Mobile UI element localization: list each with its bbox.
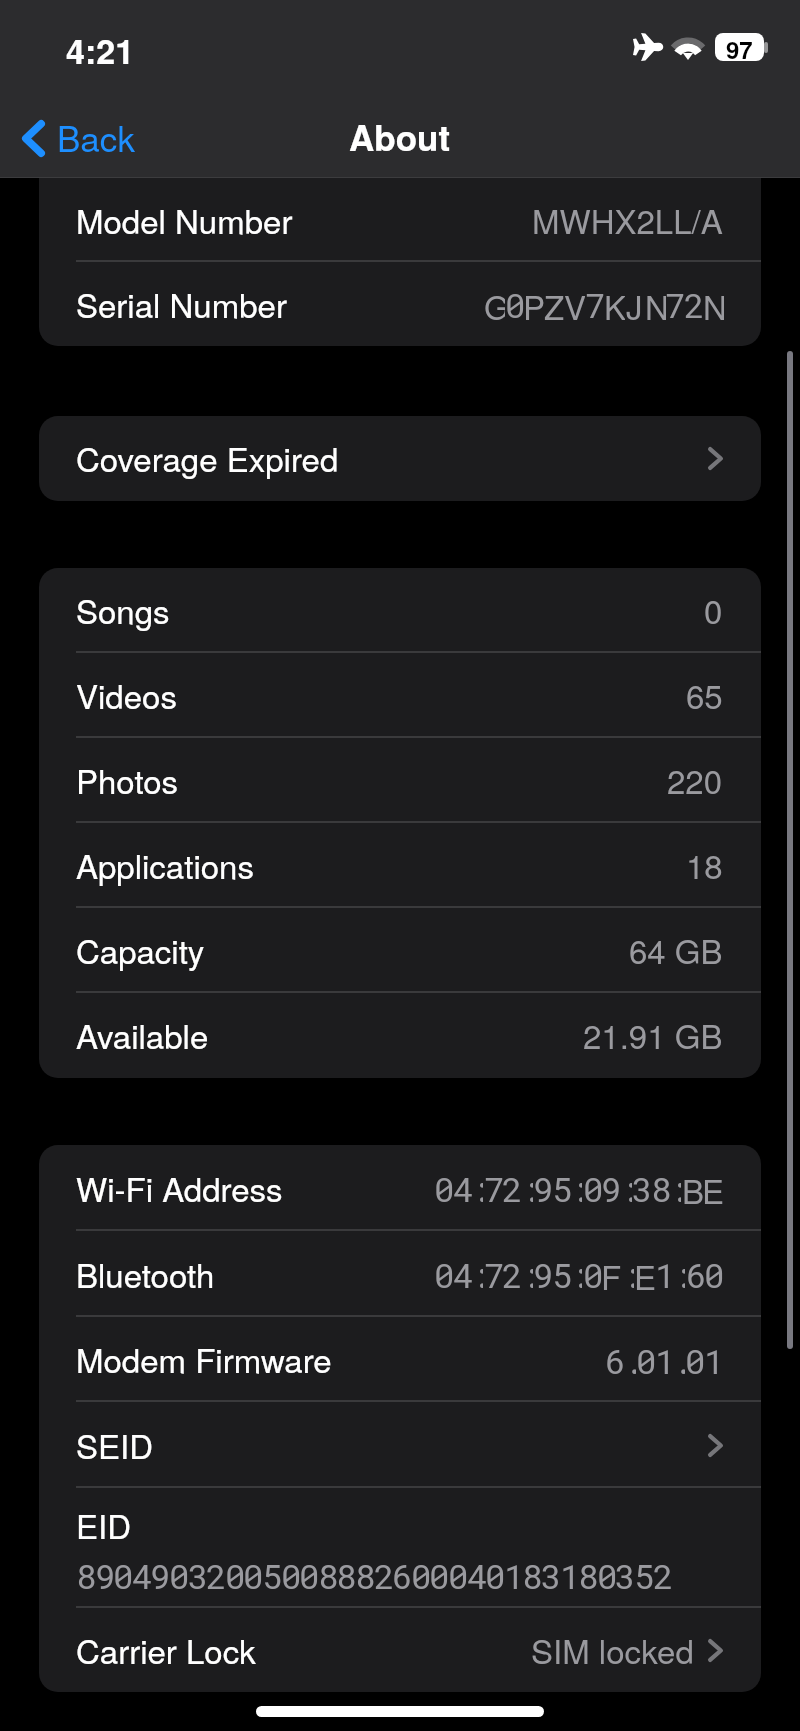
staticText: 2 bbox=[502, 1166, 521, 1208]
staticText: 0 bbox=[225, 1553, 244, 1595]
staticText: 0 bbox=[636, 1338, 655, 1380]
staticText: 8 bbox=[578, 1553, 597, 1595]
staticText: 64 GB bbox=[629, 926, 723, 973]
staticText: 8 bbox=[651, 1166, 670, 1208]
staticText: SIM locked bbox=[531, 1626, 694, 1673]
button[interactable]: Serial Number bbox=[39, 262, 761, 346]
button[interactable]: Capacity bbox=[39, 908, 761, 993]
staticText: 3 bbox=[632, 1166, 651, 1208]
staticText: 2 bbox=[502, 1252, 521, 1294]
staticText: 21.91 GB bbox=[583, 1011, 723, 1058]
staticText: Wi-Fi Address bbox=[76, 1164, 283, 1211]
staticText: Songs bbox=[76, 586, 170, 633]
staticText: 0 bbox=[597, 1553, 616, 1595]
staticText: 1 bbox=[704, 1338, 723, 1380]
staticText: Applications bbox=[76, 841, 254, 888]
staticText: 8 bbox=[318, 1553, 337, 1595]
staticText: 0 bbox=[448, 1553, 467, 1595]
staticText: 18 bbox=[686, 841, 723, 888]
staticText: 2 bbox=[374, 1553, 393, 1595]
staticText: . bbox=[624, 1338, 636, 1380]
staticText: 0 bbox=[243, 1553, 262, 1595]
staticText: 0 bbox=[411, 1553, 430, 1595]
button[interactable]: Model Number bbox=[39, 178, 761, 262]
staticText: 4:21 bbox=[66, 26, 135, 75]
staticText: 5 bbox=[552, 1252, 571, 1294]
staticText: F bbox=[601, 1252, 622, 1294]
staticText: 8 bbox=[76, 1553, 95, 1595]
staticText: : bbox=[521, 1252, 533, 1294]
staticText: 1 bbox=[655, 1338, 674, 1380]
staticText: 1 bbox=[504, 1553, 523, 1595]
staticText: Capacity bbox=[76, 926, 205, 973]
button[interactable]: Wi-Fi Address bbox=[39, 1145, 761, 1231]
staticText: 5 bbox=[262, 1553, 281, 1595]
staticText: 0 bbox=[685, 1338, 704, 1380]
staticText: . bbox=[673, 1338, 685, 1380]
staticText: Carrier Lock bbox=[76, 1626, 256, 1673]
staticText: Back bbox=[57, 112, 135, 162]
staticText: 0 bbox=[704, 586, 723, 633]
staticText: : bbox=[570, 1166, 582, 1208]
staticText: Model Number bbox=[76, 196, 293, 243]
button[interactable]: SEID bbox=[39, 1402, 761, 1488]
button[interactable]: Modem Firmware bbox=[39, 1317, 761, 1402]
staticText: 9 bbox=[601, 1166, 620, 1208]
staticText: : bbox=[471, 1166, 483, 1208]
button[interactable]: Carrier Lock bbox=[39, 1608, 761, 1692]
staticText: About bbox=[349, 112, 451, 162]
button[interactable]: Songs bbox=[39, 568, 761, 653]
staticText: 0 bbox=[485, 1553, 504, 1595]
staticText: 6 bbox=[686, 1252, 705, 1294]
staticText: MWHX2LL/A bbox=[532, 196, 723, 243]
staticText: 3 bbox=[615, 1553, 634, 1595]
staticText: 7 bbox=[585, 282, 604, 324]
button[interactable]: Photos bbox=[39, 738, 761, 823]
staticText: 1 bbox=[655, 1252, 674, 1294]
staticText: J bbox=[626, 282, 643, 324]
staticText: 3 bbox=[188, 1553, 207, 1595]
button[interactable]: Videos bbox=[39, 653, 761, 738]
staticText: 0 bbox=[281, 1553, 300, 1595]
staticText: 0 bbox=[583, 1252, 602, 1294]
staticText: 9 bbox=[95, 1553, 114, 1595]
staticText: 8 bbox=[336, 1553, 355, 1595]
staticText: E bbox=[634, 1252, 655, 1294]
staticText: : bbox=[521, 1166, 533, 1208]
staticText: 7 bbox=[484, 1252, 503, 1294]
button[interactable]: Available bbox=[39, 993, 761, 1078]
staticText: 8 bbox=[355, 1553, 374, 1595]
staticText: EID bbox=[76, 1501, 132, 1548]
staticText: Videos bbox=[76, 671, 177, 718]
staticText: 0 bbox=[169, 1553, 188, 1595]
staticText: : bbox=[669, 1166, 681, 1208]
staticText: 9 bbox=[533, 1252, 552, 1294]
button[interactable]: Coverage Expired bbox=[39, 416, 761, 501]
other: More bbox=[708, 1639, 723, 1662]
staticText: 2 bbox=[684, 282, 703, 324]
button[interactable]: Back bbox=[0, 98, 153, 178]
staticText: E bbox=[702, 1166, 723, 1208]
button[interactable]: Applications bbox=[39, 823, 761, 908]
button[interactable]: EID bbox=[39, 1488, 761, 1608]
staticText: Modem Firmware bbox=[76, 1335, 332, 1382]
staticText: 6 bbox=[605, 1338, 624, 1380]
staticText: 7 bbox=[484, 1166, 503, 1208]
staticText: : bbox=[570, 1252, 582, 1294]
staticText: 4 bbox=[132, 1553, 151, 1595]
staticText: N bbox=[703, 282, 724, 324]
staticText: V bbox=[564, 282, 585, 324]
staticText: 0 bbox=[434, 1252, 453, 1294]
staticText: 0 bbox=[583, 1166, 602, 1208]
staticText: Available bbox=[76, 1011, 209, 1058]
staticText: 5 bbox=[552, 1166, 571, 1208]
staticText: N bbox=[645, 282, 666, 324]
staticText: 65 bbox=[686, 671, 723, 718]
staticText: 2 bbox=[206, 1553, 225, 1595]
staticText: 9 bbox=[533, 1166, 552, 1208]
staticText: Serial Number bbox=[76, 280, 287, 327]
staticText: P bbox=[523, 282, 544, 324]
staticText: 1 bbox=[560, 1553, 579, 1595]
other: Wi-Fi bbox=[673, 34, 703, 60]
button[interactable]: Bluetooth bbox=[39, 1231, 761, 1317]
